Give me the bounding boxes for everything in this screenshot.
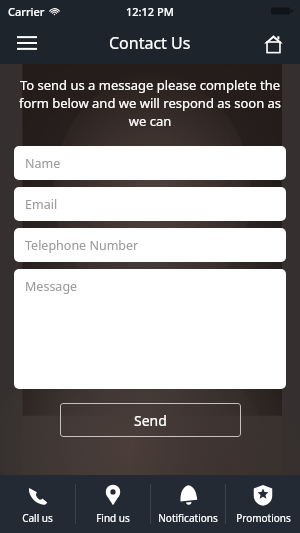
staticText: Email [25, 196, 58, 213]
staticText: Call us [22, 511, 53, 525]
button[interactable]: Message [14, 269, 286, 389]
staticText: Find us [96, 511, 130, 525]
staticText: 12:12 PM [126, 4, 174, 19]
staticText: Send [134, 411, 167, 430]
button[interactable]: Call us [0, 475, 75, 533]
button[interactable]: Home [256, 26, 290, 60]
button[interactable]: Menu [10, 26, 44, 60]
button[interactable]: Notifications [151, 475, 225, 533]
staticText: Promotions [236, 511, 291, 525]
button[interactable]: Promotions [226, 475, 300, 533]
button[interactable]: Find us [76, 475, 150, 533]
staticText: Telephone Number [25, 237, 139, 254]
staticText: Message [25, 278, 78, 295]
button[interactable]: Send [60, 403, 241, 437]
button[interactable]: Name [14, 146, 286, 180]
button[interactable]: Email [14, 187, 286, 221]
staticText: To send us a message please complete the… [14, 76, 286, 130]
staticText: Contact Us [109, 32, 191, 54]
staticText: Name [25, 155, 61, 172]
button[interactable]: Telephone Number [14, 228, 286, 262]
staticText: Notifications [158, 511, 218, 525]
staticText: Carrier [8, 4, 45, 19]
